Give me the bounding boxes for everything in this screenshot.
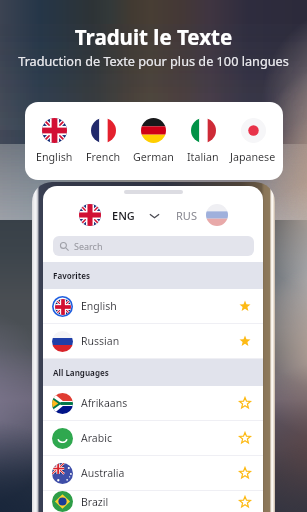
staticText: English bbox=[81, 299, 117, 313]
staticText: Afrikaans bbox=[81, 396, 128, 410]
button[interactable]: RUS bbox=[176, 204, 228, 226]
staticText: English bbox=[36, 150, 73, 165]
button[interactable]: English bbox=[30, 118, 79, 165]
other: Expand bbox=[149, 210, 160, 221]
staticText: ENG bbox=[112, 208, 135, 223]
staticText: Traduction de Texte pour plus de 100 lan… bbox=[0, 52, 307, 69]
button[interactable]: English bbox=[43, 289, 263, 323]
button[interactable]: French bbox=[79, 118, 128, 165]
staticText: Arabic bbox=[81, 431, 112, 445]
staticText: Australia bbox=[81, 466, 125, 480]
staticText: Russian bbox=[81, 334, 120, 348]
staticText: Japanese bbox=[230, 150, 276, 165]
button[interactable]: Australia bbox=[43, 456, 263, 490]
staticText: German bbox=[133, 150, 174, 165]
staticText: French bbox=[86, 150, 121, 165]
staticText: RUS bbox=[176, 208, 197, 223]
button[interactable]: Russian bbox=[43, 324, 263, 358]
button[interactable]: Search bbox=[53, 236, 254, 256]
staticText: Favorites bbox=[53, 270, 90, 281]
staticText: Brazil bbox=[81, 495, 109, 509]
button[interactable]: ENG bbox=[79, 204, 160, 226]
staticText: Search bbox=[74, 240, 103, 252]
button[interactable]: Italian bbox=[178, 118, 228, 165]
button[interactable]: Afrikaans bbox=[43, 386, 263, 420]
staticText: All Languages bbox=[53, 367, 109, 378]
staticText: Italian bbox=[187, 150, 219, 165]
button[interactable]: Brazil bbox=[43, 491, 263, 512]
button[interactable]: German bbox=[128, 118, 178, 165]
button[interactable]: Japanese bbox=[228, 118, 278, 165]
button[interactable]: Arabic bbox=[43, 421, 263, 455]
staticText: Traduit le Texte bbox=[0, 23, 307, 51]
